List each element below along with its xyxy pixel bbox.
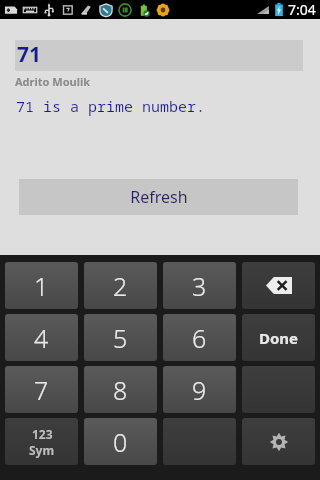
staticText: 1	[34, 269, 49, 303]
button[interactable]: Key	[163, 418, 236, 465]
button[interactable]: 6	[163, 314, 236, 361]
staticText: 7	[34, 373, 49, 407]
button[interactable]: 7	[5, 366, 78, 413]
staticText: 2	[113, 269, 128, 303]
button[interactable]: 9	[163, 366, 236, 413]
button[interactable]: 4	[5, 314, 78, 361]
staticText: Adrito Moulik	[15, 74, 91, 89]
staticText: 8	[113, 373, 128, 407]
staticText: Done	[259, 328, 299, 348]
button[interactable]: 8	[84, 366, 157, 413]
staticText: 71 is a prime number.	[16, 96, 206, 116]
staticText: 9	[192, 373, 207, 407]
button[interactable]: 3	[163, 262, 236, 309]
button[interactable]: Settings	[242, 418, 315, 465]
staticText: 3	[192, 269, 207, 303]
button[interactable]: Key	[242, 366, 315, 413]
staticText: 4	[34, 321, 49, 355]
staticText: 7:04	[288, 0, 316, 19]
button[interactable]: Refresh	[19, 179, 298, 215]
button[interactable]: 1	[5, 262, 78, 309]
button[interactable]: 71	[15, 40, 303, 71]
button[interactable]: 2	[84, 262, 157, 309]
staticText: Refresh	[130, 186, 188, 208]
staticText: 71	[17, 40, 42, 69]
button[interactable]: 5	[84, 314, 157, 361]
staticText: 123	[32, 426, 53, 442]
staticText: 5	[113, 321, 128, 355]
button[interactable]: 0	[84, 418, 157, 465]
staticText: Sym	[29, 442, 55, 458]
staticText: 0	[113, 425, 128, 459]
button[interactable]: 123	[5, 418, 78, 465]
staticText: 6	[192, 321, 207, 355]
button[interactable]: Backspace	[242, 262, 315, 309]
button[interactable]: Done	[242, 314, 315, 361]
